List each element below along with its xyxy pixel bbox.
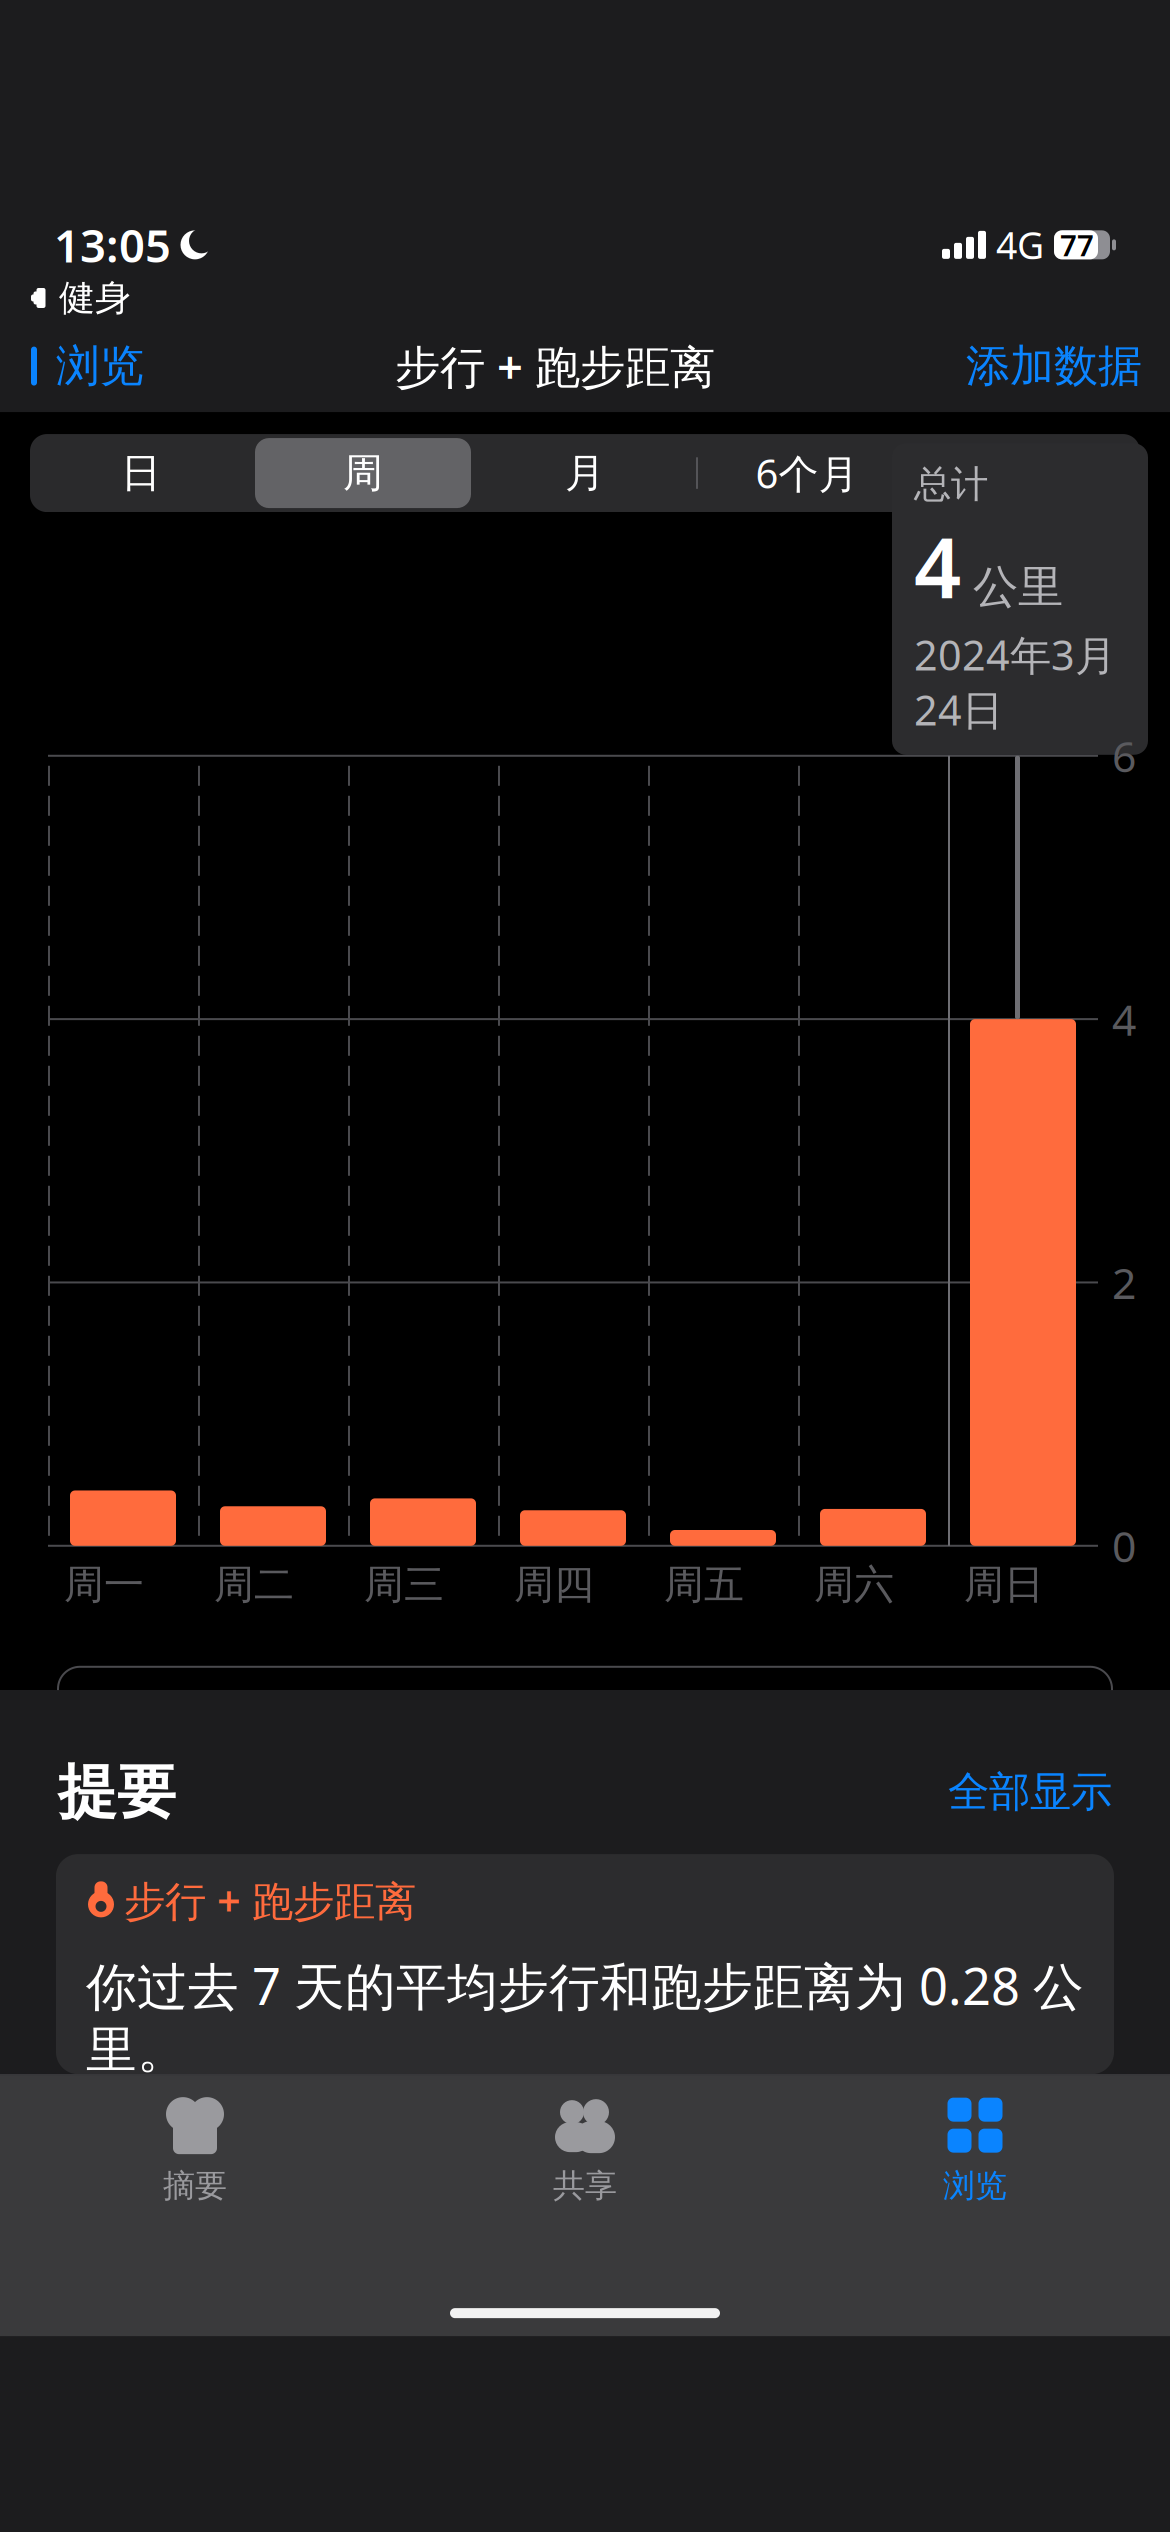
- staticText: 步行 + 跑步距离: [395, 336, 715, 396]
- staticText: 公里: [973, 559, 1063, 615]
- staticText: 13:05: [54, 215, 171, 275]
- staticText: 周二: [214, 1560, 294, 1609]
- staticText: 周日: [964, 1560, 1044, 1609]
- button[interactable]: 步行 + 跑步距离: [56, 1854, 1114, 2074]
- staticText: 共享: [553, 2166, 617, 2205]
- button[interactable]: 摘要: [0, 2076, 390, 2221]
- staticText: 0: [1112, 1517, 1136, 1574]
- staticText: 总计: [914, 461, 988, 507]
- staticText: 6: [1112, 727, 1136, 784]
- staticText: 摘要: [163, 2166, 227, 2205]
- staticText: 周一: [64, 1560, 144, 1609]
- staticText: 月: [565, 448, 605, 498]
- staticText: 步行 + 跑步距离: [124, 1873, 416, 1928]
- staticText: 2024年3月24日: [914, 627, 1116, 737]
- button[interactable]: 共享: [390, 2076, 780, 2221]
- staticText: 4: [1112, 991, 1136, 1047]
- button[interactable]: 浏览: [0, 327, 154, 405]
- staticText: 你过去 7 天的平均步行和跑步距离为 0.28 公里。: [86, 1952, 1084, 2081]
- staticText: 周四: [514, 1560, 594, 1609]
- staticText: 周三: [364, 1560, 444, 1609]
- staticText: 4: [914, 511, 961, 621]
- staticText: 4G: [996, 220, 1044, 270]
- staticText: 周: [343, 448, 383, 498]
- button[interactable]: 全部显示: [934, 1759, 1112, 1825]
- staticText: 周六: [814, 1560, 894, 1609]
- button[interactable]: 趋势: [58, 1667, 1112, 1779]
- staticText: 全部显示: [948, 1767, 1112, 1817]
- staticText: 2: [1112, 1254, 1136, 1311]
- staticText: 提要: [58, 1756, 176, 1828]
- staticText: 健身: [59, 276, 131, 320]
- button[interactable]: 添加数据: [956, 327, 1170, 405]
- button[interactable]: 浏览: [780, 2076, 1170, 2221]
- staticText: 浏览: [943, 2166, 1007, 2205]
- staticText: 添加数据: [966, 339, 1142, 393]
- staticText: 6个月: [755, 446, 858, 500]
- staticText: 浏览: [56, 339, 144, 393]
- staticText: 日: [121, 448, 161, 498]
- staticText: 周五: [664, 1560, 744, 1609]
- staticText: 77: [1060, 225, 1094, 264]
